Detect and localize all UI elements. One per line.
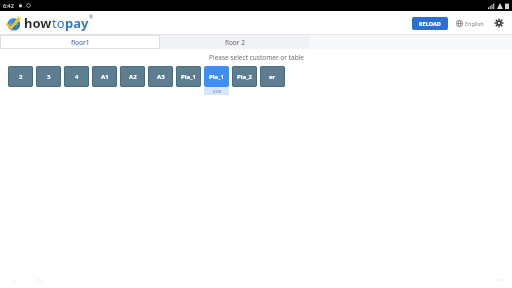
staticText: 6:42 [3, 2, 14, 9]
button[interactable]: A1 [92, 66, 117, 87]
staticText: er [269, 73, 276, 81]
staticText: A1 [101, 73, 109, 81]
staticText: floor 2 [225, 38, 245, 47]
button[interactable]: A3 [148, 66, 173, 87]
button[interactable]: Pla_2 [232, 66, 257, 87]
staticText: 3 [47, 73, 51, 81]
staticText: how [24, 14, 52, 32]
staticText: Pla_2 [237, 73, 253, 81]
button[interactable]: RELOAD [412, 17, 448, 30]
staticText: 4 [75, 73, 79, 81]
staticText: A2 [129, 73, 137, 81]
button[interactable]: A2 [120, 66, 145, 87]
staticText: floor1 [71, 38, 90, 47]
button[interactable]: 2 [8, 66, 33, 87]
staticText: pay [65, 14, 89, 32]
button[interactable]: er [260, 66, 285, 87]
button[interactable]: floor1 [0, 35, 160, 49]
staticText: Pla_1 [209, 73, 225, 81]
button[interactable]: 3 [36, 66, 61, 87]
button[interactable]: Pla_1 [204, 66, 229, 95]
staticText: A3 [157, 73, 165, 81]
staticText: 2 [19, 73, 23, 81]
button[interactable]: English [454, 18, 486, 29]
staticText: Pla_1 [181, 73, 197, 81]
button[interactable]: Settings [492, 16, 506, 30]
staticText: to [52, 14, 65, 32]
staticText: ® [89, 14, 94, 21]
button[interactable]: 4 [64, 66, 89, 87]
staticText: English [465, 20, 484, 27]
staticText: Please select customer or table [209, 53, 304, 62]
staticText: 0.00 [213, 89, 221, 94]
button[interactable]: Pla_1 [176, 66, 201, 87]
staticText: RELOAD [419, 20, 441, 27]
button[interactable]: floor 2 [160, 35, 310, 49]
